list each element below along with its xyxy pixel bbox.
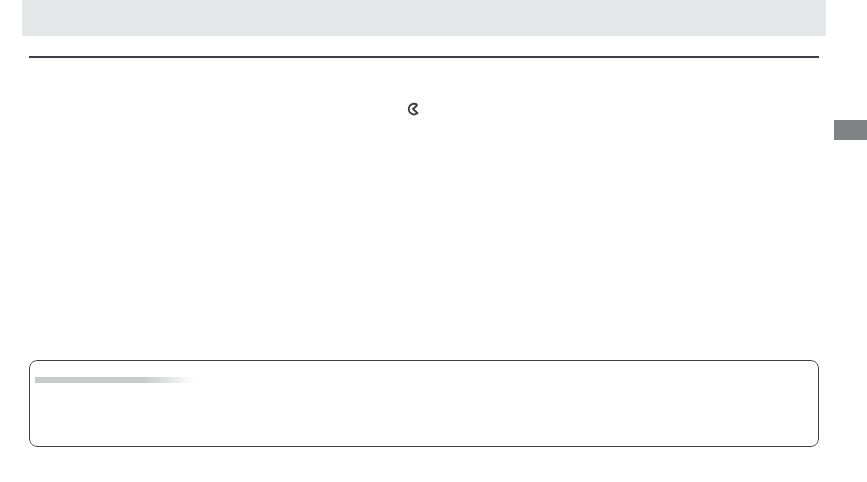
button[interactable]: [29, 360, 819, 447]
other: Logo: [406, 101, 422, 117]
